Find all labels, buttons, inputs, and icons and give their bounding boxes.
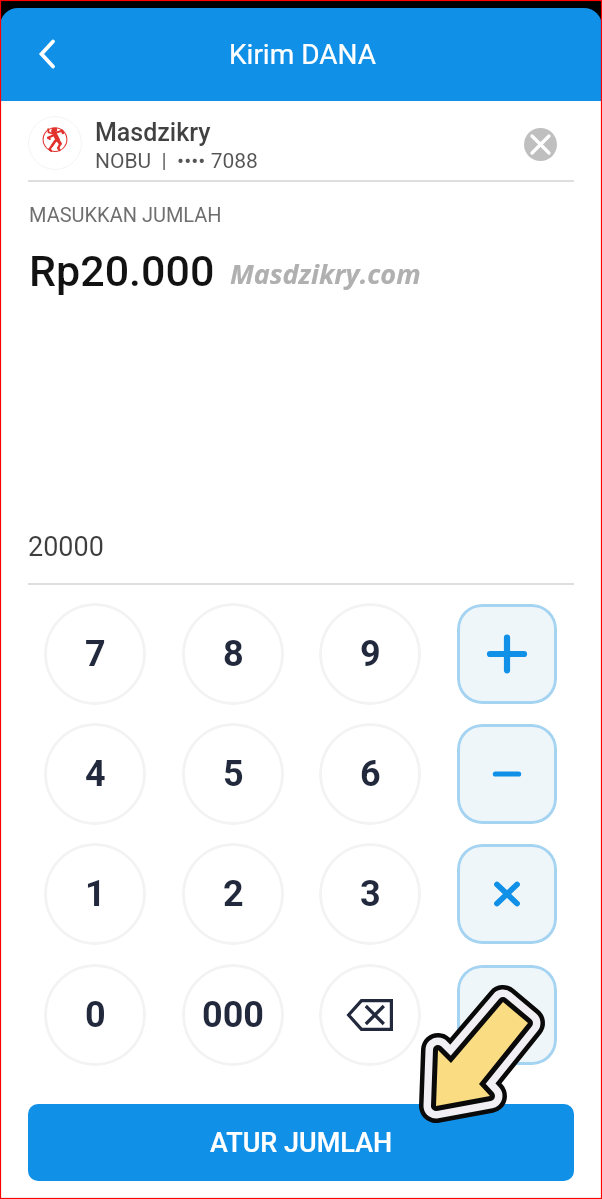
button[interactable]: 8 xyxy=(182,603,284,705)
staticText: 3 xyxy=(360,873,381,915)
staticText: 2 xyxy=(223,873,244,915)
staticText: 4 xyxy=(85,753,106,795)
button[interactable]: 5 xyxy=(182,723,284,825)
staticText: 20000 xyxy=(28,531,104,563)
staticText: 8 xyxy=(223,633,244,675)
staticText: 6 xyxy=(360,753,381,795)
staticText: 000 xyxy=(202,994,264,1036)
staticText: Masdzikry xyxy=(95,118,211,147)
button[interactable]: Back xyxy=(24,31,70,77)
staticText: MASUKKAN JUMLAH xyxy=(29,203,222,226)
button[interactable]: 2 xyxy=(182,843,284,945)
button[interactable]: ATUR JUMLAH xyxy=(28,1104,574,1181)
button[interactable]: 4 xyxy=(44,723,146,825)
button[interactable]: Clear recipient xyxy=(524,128,557,161)
staticText: 9 xyxy=(360,633,381,675)
button[interactable]: 1 xyxy=(44,843,146,945)
button[interactable]: 6 xyxy=(319,723,421,825)
staticText: NOBU | •••• 7088 xyxy=(95,149,258,174)
staticText: 0 xyxy=(85,994,106,1036)
button[interactable]: 9 xyxy=(319,603,421,705)
staticText: Rp20.000 xyxy=(29,246,215,296)
staticText: 5 xyxy=(223,753,244,795)
staticText: ATUR JUMLAH xyxy=(210,1127,393,1159)
button[interactable]: 000 xyxy=(182,964,284,1066)
staticText: Kirim DANA xyxy=(229,38,377,71)
button[interactable]: Backspace xyxy=(319,964,421,1066)
staticText: 1 xyxy=(85,873,106,915)
button[interactable]: 3 xyxy=(319,843,421,945)
staticText: Masdzikry.com xyxy=(230,255,421,292)
button[interactable] xyxy=(0,101,602,180)
button[interactable]: Equals xyxy=(457,965,557,1065)
button[interactable]: 0 xyxy=(44,964,146,1066)
button[interactable]: Subtract xyxy=(457,724,557,824)
button[interactable]: 7 xyxy=(44,603,146,705)
button[interactable]: Multiply xyxy=(457,844,557,944)
button[interactable]: Add xyxy=(457,604,557,704)
staticText: 7 xyxy=(85,633,106,675)
